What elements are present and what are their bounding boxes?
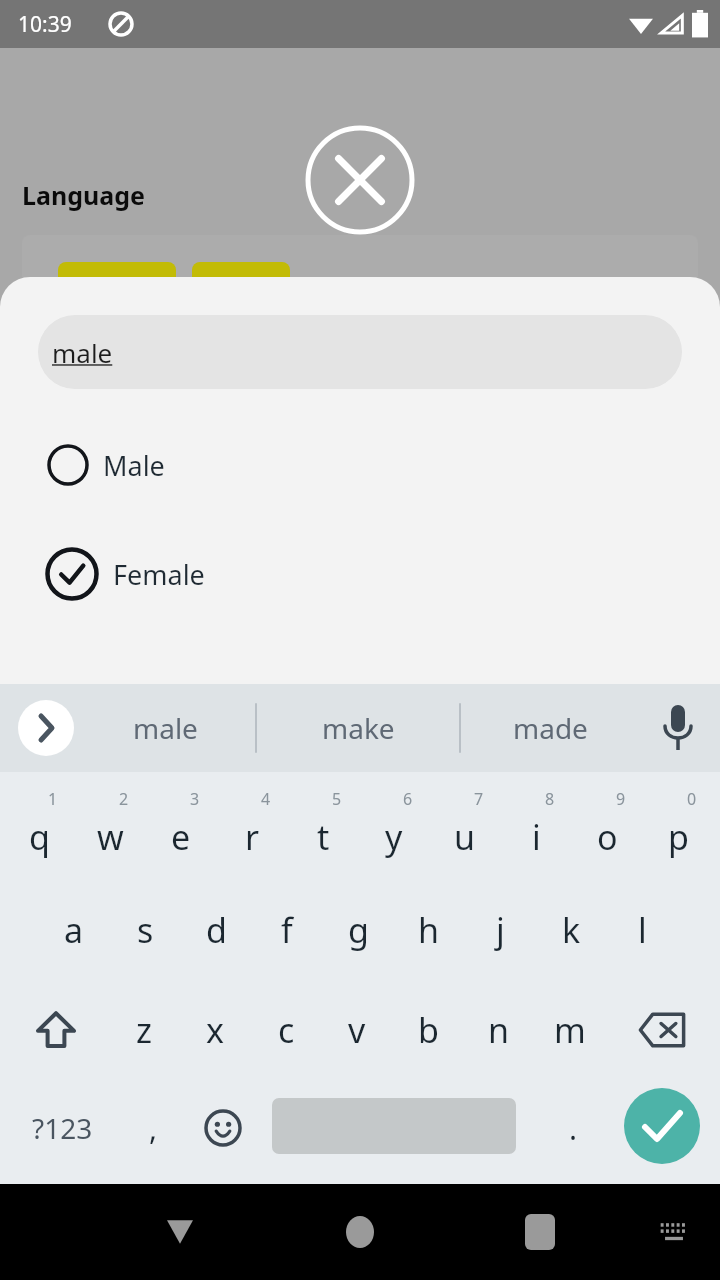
button[interactable]: Recent apps <box>505 1184 575 1280</box>
staticText: ?123 <box>32 1109 93 1147</box>
staticText: 0 <box>687 788 697 810</box>
button[interactable]: 9 <box>572 780 642 880</box>
staticText: t <box>317 814 330 860</box>
button[interactable]: 2 <box>75 780 145 880</box>
button[interactable]: 6 <box>359 780 429 880</box>
button[interactable]: 8 <box>501 780 571 880</box>
button[interactable]: More suggestions <box>18 700 74 756</box>
staticText: p <box>668 814 689 860</box>
staticText: Language <box>22 178 145 212</box>
staticText: f <box>281 907 293 953</box>
button[interactable]: . <box>540 1080 606 1176</box>
staticText: b <box>418 1007 439 1053</box>
staticText: k <box>562 907 581 953</box>
button[interactable]: 0 <box>643 780 713 880</box>
staticText: male <box>133 709 198 747</box>
button[interactable]: Enter <box>624 1088 700 1164</box>
button[interactable]: , <box>118 1080 188 1176</box>
staticText: l <box>638 907 647 953</box>
staticText: , <box>149 1108 158 1149</box>
button[interactable]: Backspace <box>624 980 700 1080</box>
staticText: male <box>52 335 113 370</box>
button[interactable]: s <box>110 880 180 980</box>
button[interactable]: l <box>607 880 677 980</box>
button[interactable]: Male <box>0 434 720 496</box>
button[interactable]: a <box>39 880 109 980</box>
button[interactable]: 1 <box>4 780 74 880</box>
staticText: i <box>532 814 541 860</box>
button[interactable]: d <box>181 880 251 980</box>
button[interactable]: z <box>109 980 179 1080</box>
staticText: s <box>137 907 154 953</box>
staticText: w <box>97 814 124 860</box>
button[interactable]: g <box>323 880 393 980</box>
button[interactable]: 5 <box>288 780 358 880</box>
button[interactable]: Switch keyboard <box>644 1202 704 1262</box>
staticText: d <box>206 907 227 953</box>
staticText: make <box>322 709 395 747</box>
button[interactable]: Home <box>325 1184 395 1280</box>
button[interactable]: 4 <box>217 780 287 880</box>
button[interactable]: made <box>480 684 620 772</box>
button[interactable]: x <box>180 980 250 1080</box>
staticText: c <box>278 1007 295 1053</box>
staticText: 1 <box>48 788 58 810</box>
staticText: h <box>418 907 440 953</box>
staticText: 3 <box>190 788 200 810</box>
staticText: j <box>496 907 505 953</box>
staticText: 7 <box>474 788 484 810</box>
button[interactable]: f <box>252 880 322 980</box>
button[interactable]: make <box>288 684 428 772</box>
button[interactable]: male <box>38 315 682 389</box>
button[interactable]: ?123 <box>6 1080 118 1176</box>
staticText: 2 <box>119 788 129 810</box>
staticText: 6 <box>403 788 413 810</box>
staticText: 9 <box>616 788 626 810</box>
button[interactable]: 7 <box>430 780 500 880</box>
staticText: r <box>245 814 260 860</box>
staticText: o <box>597 814 618 860</box>
staticText: Male <box>103 447 165 484</box>
staticText: a <box>64 907 84 953</box>
button[interactable]: h <box>394 880 464 980</box>
staticText: 5 <box>332 788 342 810</box>
button[interactable]: c <box>251 980 321 1080</box>
staticText: 10:39 <box>18 10 72 39</box>
button[interactable]: Close <box>305 125 415 235</box>
button[interactable]: k <box>536 880 606 980</box>
staticText: y <box>385 814 403 860</box>
staticText: x <box>206 1007 224 1053</box>
staticText: 4 <box>261 788 271 810</box>
staticText: u <box>454 814 476 860</box>
staticText: made <box>513 709 588 747</box>
staticText: 8 <box>545 788 555 810</box>
button[interactable]: n <box>464 980 534 1080</box>
button[interactable]: v <box>322 980 392 1080</box>
button[interactable]: m <box>535 980 605 1080</box>
staticText: z <box>136 1007 152 1053</box>
button[interactable]: Shift <box>18 980 94 1080</box>
staticText: . <box>569 1108 578 1149</box>
staticText: v <box>348 1007 366 1053</box>
button[interactable]: Back <box>145 1184 215 1280</box>
staticText: Female <box>113 556 205 593</box>
staticText: e <box>171 814 191 860</box>
button[interactable]: Female <box>0 541 720 607</box>
button[interactable]: b <box>393 980 463 1080</box>
button[interactable]: Emoji <box>186 1080 260 1176</box>
button[interactable]: Voice input <box>650 700 706 756</box>
staticText: m <box>554 1007 586 1053</box>
staticText: n <box>488 1007 510 1053</box>
button[interactable]: male <box>95 684 235 772</box>
button[interactable]: 3 <box>146 780 216 880</box>
staticText: q <box>29 814 50 860</box>
staticText: g <box>348 907 369 953</box>
button[interactable]: j <box>465 880 535 980</box>
